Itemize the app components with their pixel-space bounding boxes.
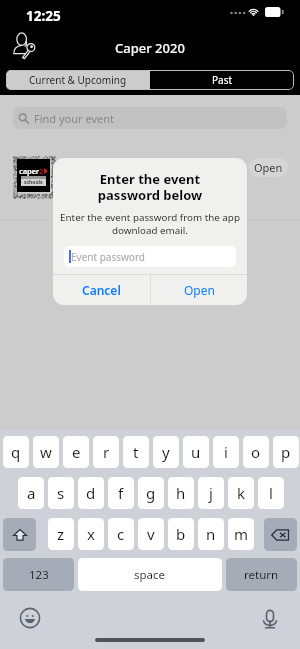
staticText: Event password: [71, 250, 145, 264]
button[interactable]: a: [18, 477, 44, 509]
staticText: Enter the event password below: [63, 170, 237, 204]
staticText: Cancel: [82, 282, 121, 298]
button[interactable]: o: [243, 436, 269, 468]
staticText: w: [40, 442, 52, 462]
button[interactable]: v: [138, 518, 164, 550]
staticText: 12:25: [26, 7, 61, 25]
staticText: j: [209, 483, 213, 503]
staticText: Open: [254, 160, 283, 175]
staticText: d: [86, 483, 96, 503]
staticText: v: [147, 524, 155, 544]
button[interactable]: Sign in with key: [13, 32, 37, 59]
button[interactable]: b: [168, 518, 194, 550]
staticText: 2: [39, 166, 44, 176]
button[interactable]: h: [168, 477, 194, 509]
button[interactable]: Current & Upcoming: [6, 70, 150, 90]
staticText: caper: [19, 166, 39, 176]
button[interactable]: Cancel: [53, 274, 150, 305]
button[interactable]: z: [48, 518, 74, 550]
staticText: Enter the event password from the app do…: [56, 211, 244, 237]
button[interactable]: Event password: [64, 246, 236, 267]
staticText: space: [134, 567, 166, 583]
button[interactable]: m: [228, 518, 254, 550]
button[interactable]: s: [48, 477, 74, 509]
staticText: c: [117, 524, 125, 544]
button[interactable]: q: [3, 436, 29, 468]
staticText: q: [11, 442, 21, 462]
button[interactable]: 123: [3, 558, 74, 591]
staticText: Open: [184, 282, 215, 298]
staticText: e: [72, 442, 81, 462]
button[interactable]: i: [213, 436, 239, 468]
staticText: y: [162, 442, 170, 462]
button[interactable]: p: [273, 436, 299, 468]
button[interactable]: Shift: [3, 518, 36, 551]
staticText: a: [27, 483, 36, 503]
button[interactable]: j: [198, 477, 224, 509]
button[interactable]: w: [33, 436, 59, 468]
staticText: s: [57, 483, 65, 503]
staticText: m: [234, 524, 249, 544]
button[interactable]: Backspace: [264, 518, 297, 551]
button[interactable]: g: [138, 477, 164, 509]
staticText: l: [269, 483, 273, 503]
button[interactable]: k: [228, 477, 254, 509]
staticText: 123: [29, 567, 49, 583]
staticText: n: [206, 524, 216, 544]
staticText: b: [176, 524, 186, 544]
button[interactable]: c: [108, 518, 134, 550]
button[interactable]: space: [78, 558, 222, 591]
button[interactable]: Open: [249, 158, 288, 177]
staticText: u: [191, 442, 201, 462]
button[interactable]: Dictation: [258, 607, 282, 631]
staticText: o: [251, 442, 261, 462]
staticText: p: [281, 442, 291, 462]
staticText: Current & Upcoming: [29, 73, 127, 87]
button[interactable]: f: [108, 477, 134, 509]
staticText: Caper 2020: [115, 39, 185, 57]
staticText: z: [57, 524, 65, 544]
button[interactable]: y: [153, 436, 179, 468]
staticText: g: [146, 483, 156, 503]
button[interactable]: Open: [151, 274, 247, 305]
staticText: i: [224, 442, 228, 462]
button[interactable]: x: [78, 518, 104, 550]
button[interactable]: n: [198, 518, 224, 550]
staticText: k: [237, 483, 246, 503]
button[interactable]: return: [226, 558, 297, 591]
staticText: Past: [212, 73, 233, 87]
staticText: x: [87, 524, 95, 544]
button[interactable]: Find your event: [13, 107, 287, 129]
staticText: schools: [24, 179, 43, 186]
staticText: f: [118, 483, 124, 503]
staticText: h: [176, 483, 186, 503]
button[interactable]: e: [63, 436, 89, 468]
button[interactable]: Past: [150, 70, 294, 90]
button[interactable]: Emoji keyboard: [18, 606, 42, 630]
staticText: t: [133, 442, 139, 462]
staticText: Find your event: [34, 111, 114, 126]
button[interactable]: r: [93, 436, 119, 468]
staticText: return: [244, 567, 279, 583]
button[interactable]: d: [78, 477, 104, 509]
staticText: r: [103, 442, 110, 462]
button[interactable]: u: [183, 436, 209, 468]
button[interactable]: l: [258, 477, 284, 509]
button[interactable]: t: [123, 436, 149, 468]
